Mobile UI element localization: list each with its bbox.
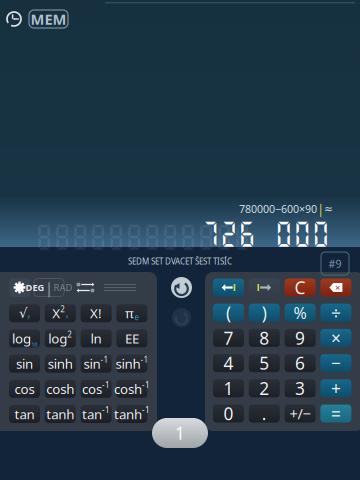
button[interactable]: ÷	[320, 304, 351, 322]
staticText: -1	[102, 405, 110, 415]
staticText: +/−	[290, 404, 311, 423]
button[interactable]: cos	[9, 380, 40, 398]
button[interactable]: 8	[249, 329, 280, 347]
button[interactable]: X!	[81, 304, 112, 322]
button[interactable]: %	[285, 304, 316, 322]
staticText: DEG	[25, 281, 44, 294]
staticText: 9	[295, 326, 305, 349]
button[interactable]: cosh	[45, 380, 76, 398]
staticText: sinh	[48, 355, 73, 372]
button[interactable]: 7	[213, 329, 244, 347]
button[interactable]: .	[249, 404, 280, 422]
staticText: 1	[175, 421, 185, 444]
staticText: -1	[142, 379, 150, 390]
staticText: π	[125, 304, 134, 322]
staticText: 888888888888	[35, 221, 275, 254]
button[interactable]: DEG	[34, 278, 64, 296]
staticText: 7	[223, 326, 233, 349]
staticText: X	[52, 304, 60, 322]
button[interactable]: (	[213, 304, 244, 322]
button[interactable]: 9	[285, 329, 316, 347]
button[interactable]: Cursor left	[213, 278, 244, 296]
button[interactable]: 1	[152, 418, 208, 448]
button[interactable]: History	[5, 10, 23, 28]
staticText: cos	[82, 380, 102, 398]
staticText: -1	[142, 405, 150, 415]
button[interactable]: π	[116, 304, 147, 322]
staticText: e	[134, 312, 139, 322]
button[interactable]: sinh	[45, 355, 76, 373]
staticText: log	[48, 329, 67, 347]
staticText: -1	[140, 354, 148, 365]
staticText: -1	[101, 354, 109, 365]
button[interactable]: ln	[81, 329, 112, 347]
button[interactable]: −	[320, 354, 351, 372]
staticText: cos	[14, 380, 34, 398]
button[interactable]: 4	[213, 354, 244, 372]
button[interactable]: 3	[285, 379, 316, 397]
button[interactable]: sin	[81, 355, 112, 373]
button[interactable]: cosh	[116, 380, 147, 398]
button[interactable]: =	[320, 404, 351, 422]
staticText: 6	[295, 352, 305, 375]
button[interactable]: sinh	[116, 355, 147, 373]
staticText: 4	[223, 352, 233, 375]
staticText: -1	[102, 379, 110, 390]
button[interactable]: +	[320, 379, 351, 397]
staticText: RAD	[53, 281, 72, 294]
staticText: log	[12, 329, 31, 347]
staticText: sinh	[115, 355, 140, 372]
button[interactable]: Delete	[320, 278, 351, 296]
button[interactable]: cos	[81, 380, 112, 398]
button[interactable]: C	[285, 278, 316, 296]
button[interactable]: Redo	[172, 308, 191, 327]
staticText: ≈	[324, 203, 333, 215]
button[interactable]: +/−	[285, 404, 316, 422]
staticText: X!	[90, 304, 102, 322]
button[interactable]: EE	[116, 329, 147, 347]
staticText: 780000−600×90	[239, 202, 317, 216]
staticText: ÷	[331, 301, 341, 324]
staticText: (	[226, 301, 231, 324]
button[interactable]: ×	[320, 329, 351, 347]
staticText: 1	[223, 377, 233, 400]
staticText: MEM	[30, 9, 66, 29]
button[interactable]: tan	[81, 405, 112, 423]
staticText: 2	[259, 377, 269, 400]
staticText: tan	[14, 405, 34, 423]
button[interactable]: Swap	[76, 281, 95, 293]
staticText: EE	[125, 329, 139, 347]
button[interactable]: √	[9, 304, 40, 322]
button[interactable]: MEM	[29, 10, 68, 28]
staticText: %	[294, 302, 307, 323]
button[interactable]: 5	[249, 354, 280, 372]
staticText: ×	[335, 281, 340, 294]
button[interactable]: sin	[9, 355, 40, 373]
staticText: −	[331, 352, 341, 375]
button[interactable]: Undo	[171, 277, 192, 298]
staticText: C	[295, 276, 306, 299]
button[interactable]: )	[249, 304, 280, 322]
staticText: tanh	[46, 405, 74, 423]
button[interactable]: 2	[249, 379, 280, 397]
button[interactable]: tanh	[45, 405, 76, 423]
button[interactable]: 6	[285, 354, 316, 372]
staticText: ln	[91, 329, 102, 347]
button[interactable]: X	[45, 304, 76, 322]
button[interactable]: #9	[321, 252, 349, 275]
button[interactable]: Settings	[9, 278, 30, 297]
button[interactable]: tan	[9, 405, 40, 423]
button[interactable]: tanh	[116, 405, 147, 423]
staticText: cosh	[114, 380, 142, 398]
staticText: )	[262, 301, 267, 324]
staticText: 726 000	[201, 217, 341, 250]
button[interactable]: Cursor right	[249, 278, 280, 296]
staticText: =	[331, 402, 341, 425]
button[interactable]: log	[45, 329, 76, 347]
button[interactable]: log	[9, 329, 40, 347]
button[interactable]: 1	[213, 379, 244, 397]
staticText: ʸ	[27, 312, 30, 322]
button[interactable]: 0	[213, 404, 244, 422]
staticText: ₁₀	[31, 337, 37, 348]
staticText: SEDM SET DVACET ŠEST TISÍC	[128, 256, 232, 267]
